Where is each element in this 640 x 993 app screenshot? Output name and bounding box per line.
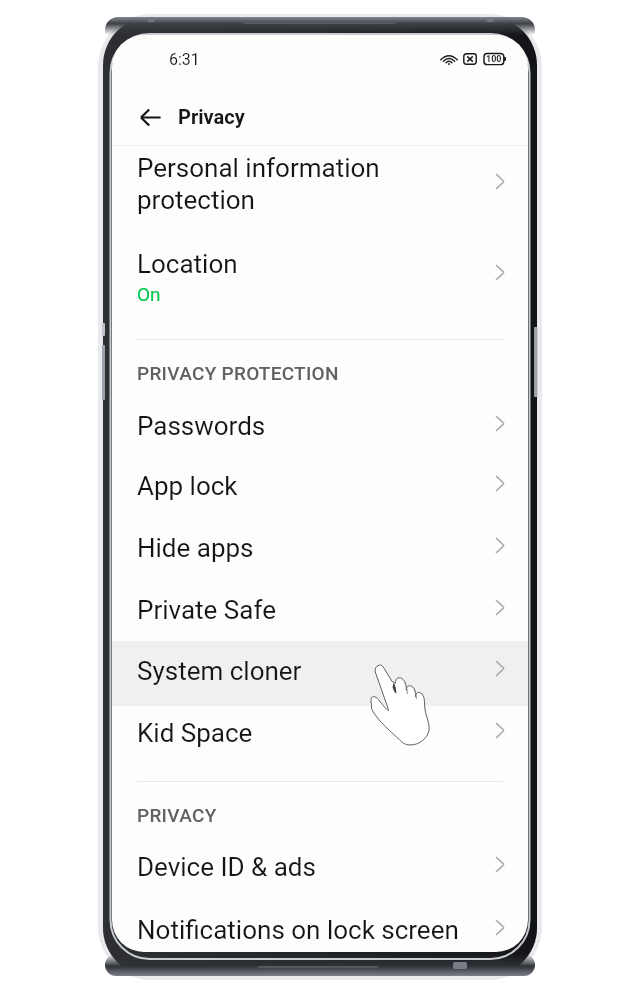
button[interactable] bbox=[112, 641, 528, 706]
button[interactable]: Private Safe bbox=[112, 579, 528, 640]
button[interactable]: Personal information protection bbox=[112, 147, 528, 232]
button[interactable]: Hide apps bbox=[112, 517, 528, 578]
button[interactable]: Passwords bbox=[112, 395, 528, 456]
button[interactable]: Back bbox=[126, 93, 174, 141]
staticText: System cloner bbox=[137, 656, 302, 686]
staticText: 6:31 bbox=[169, 50, 200, 69]
staticText: 100 bbox=[486, 54, 502, 65]
button[interactable]: Location bbox=[112, 249, 528, 327]
button[interactable]: System cloner bbox=[112, 640, 528, 701]
staticText: On bbox=[137, 283, 161, 305]
button[interactable]: App lock bbox=[112, 455, 528, 516]
staticText: Device ID & ads bbox=[137, 852, 316, 882]
staticText: Kid Space bbox=[137, 718, 253, 748]
staticText: Notifications on lock screen bbox=[137, 915, 459, 945]
staticText: App lock bbox=[137, 471, 238, 501]
button[interactable]: Notifications on lock screen bbox=[112, 899, 528, 952]
staticText: Personal information protection bbox=[137, 153, 380, 216]
staticText: Hide apps bbox=[137, 533, 254, 563]
button[interactable]: Kid Space bbox=[112, 702, 528, 763]
staticText: Passwords bbox=[137, 411, 266, 441]
button[interactable]: Device ID & ads bbox=[112, 836, 528, 897]
staticText: Privacy bbox=[178, 105, 245, 128]
staticText: PRIVACY PROTECTION bbox=[137, 362, 339, 384]
staticText: Location bbox=[137, 249, 238, 279]
staticText: PRIVACY bbox=[137, 804, 217, 826]
staticText: Private Safe bbox=[137, 595, 276, 625]
